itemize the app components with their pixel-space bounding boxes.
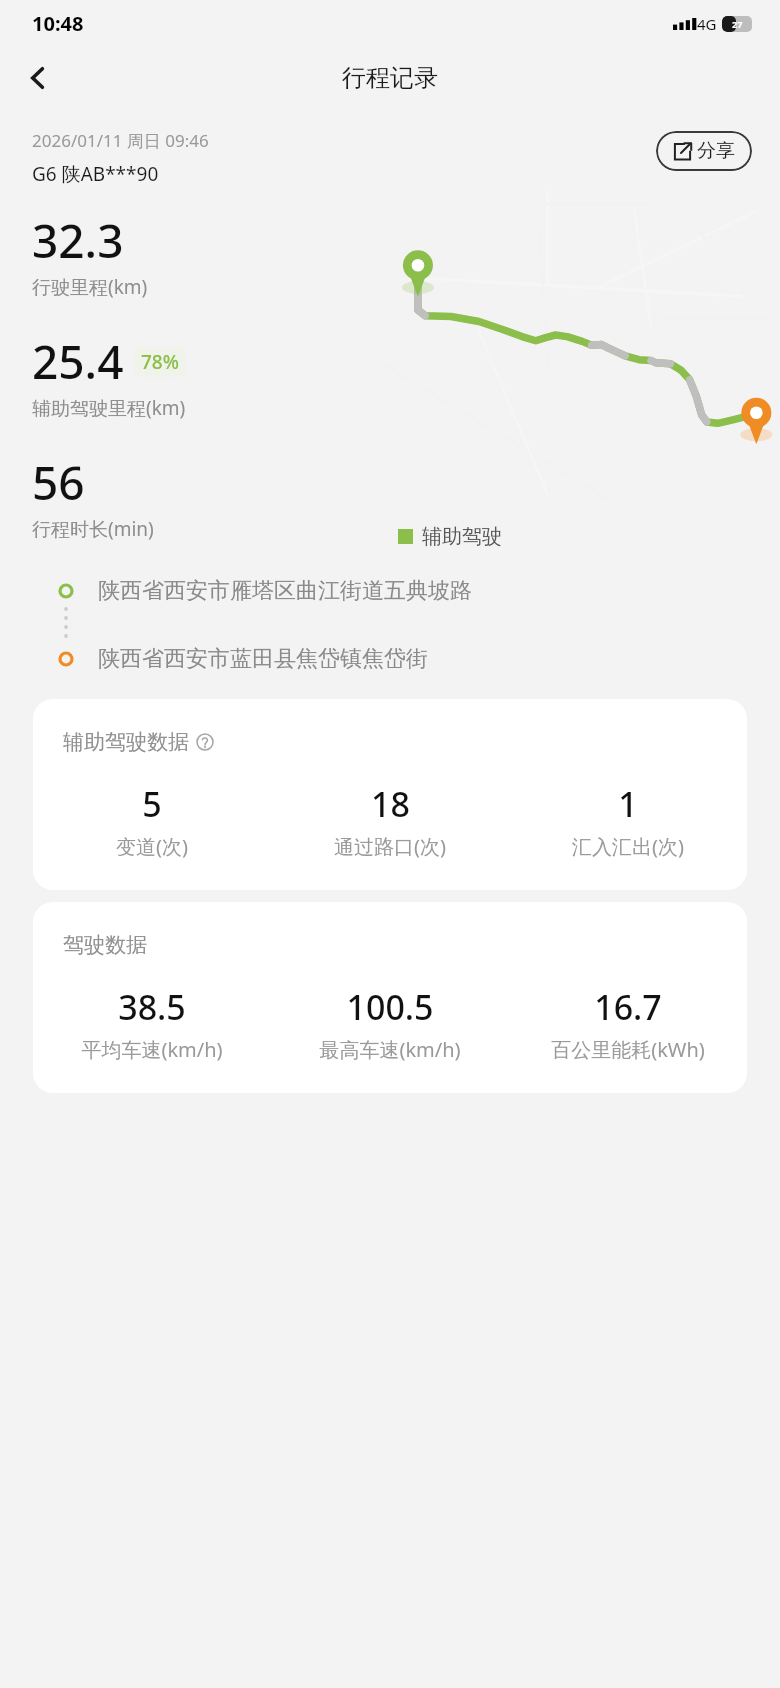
staticText: 56 — [32, 451, 85, 514]
staticText: 辅助驾驶 — [422, 524, 502, 549]
staticText: 78% — [141, 349, 179, 375]
staticText: 辅助驾驶数据 — [63, 729, 189, 755]
staticText: 陕西省西安市雁塔区曲江街道五典坡路 — [98, 577, 472, 605]
staticText: 汇入汇出(次) — [572, 833, 684, 860]
button[interactable]: 驾驶数据 — [33, 902, 747, 1093]
button[interactable]: 分享 — [656, 131, 752, 171]
staticText: 18 — [371, 781, 410, 827]
staticText: 38.5 — [118, 984, 186, 1030]
staticText: G6 陕AB***90 — [32, 161, 159, 187]
staticText: 变道(次) — [116, 833, 188, 860]
button[interactable]: Back — [10, 50, 66, 106]
staticText: 行程记录 — [342, 63, 438, 93]
staticText: 最高车速(km/h) — [319, 1036, 461, 1063]
staticText: 16.7 — [594, 984, 662, 1030]
staticText: 驾驶数据 — [63, 932, 147, 958]
staticText: 分享 — [697, 139, 735, 163]
button[interactable]: 辅助驾驶数据 — [33, 699, 747, 890]
staticText: 25.4 — [32, 330, 124, 393]
staticText: 通过路口(次) — [334, 833, 446, 860]
staticText: 2026/01/11 周日 09:46 — [32, 129, 209, 152]
staticText: 行程时长(min) — [32, 516, 154, 542]
staticText: 辅助驾驶里程(km) — [32, 395, 186, 421]
staticText: 100.5 — [346, 984, 434, 1030]
staticText: 1 — [618, 781, 638, 827]
staticText: 陕西省西安市蓝田县焦岱镇焦岱街 — [98, 645, 428, 673]
staticText: 5 — [142, 781, 162, 827]
staticText: 平均车速(km/h) — [81, 1036, 223, 1063]
staticText: 10:48 — [32, 10, 84, 37]
staticText: 4G — [697, 14, 717, 34]
staticText: 32.3 — [32, 209, 124, 272]
staticText: 27 — [732, 18, 743, 30]
staticText: 行驶里程(km) — [32, 274, 148, 300]
staticText: 百公里能耗(kWh) — [551, 1036, 705, 1063]
